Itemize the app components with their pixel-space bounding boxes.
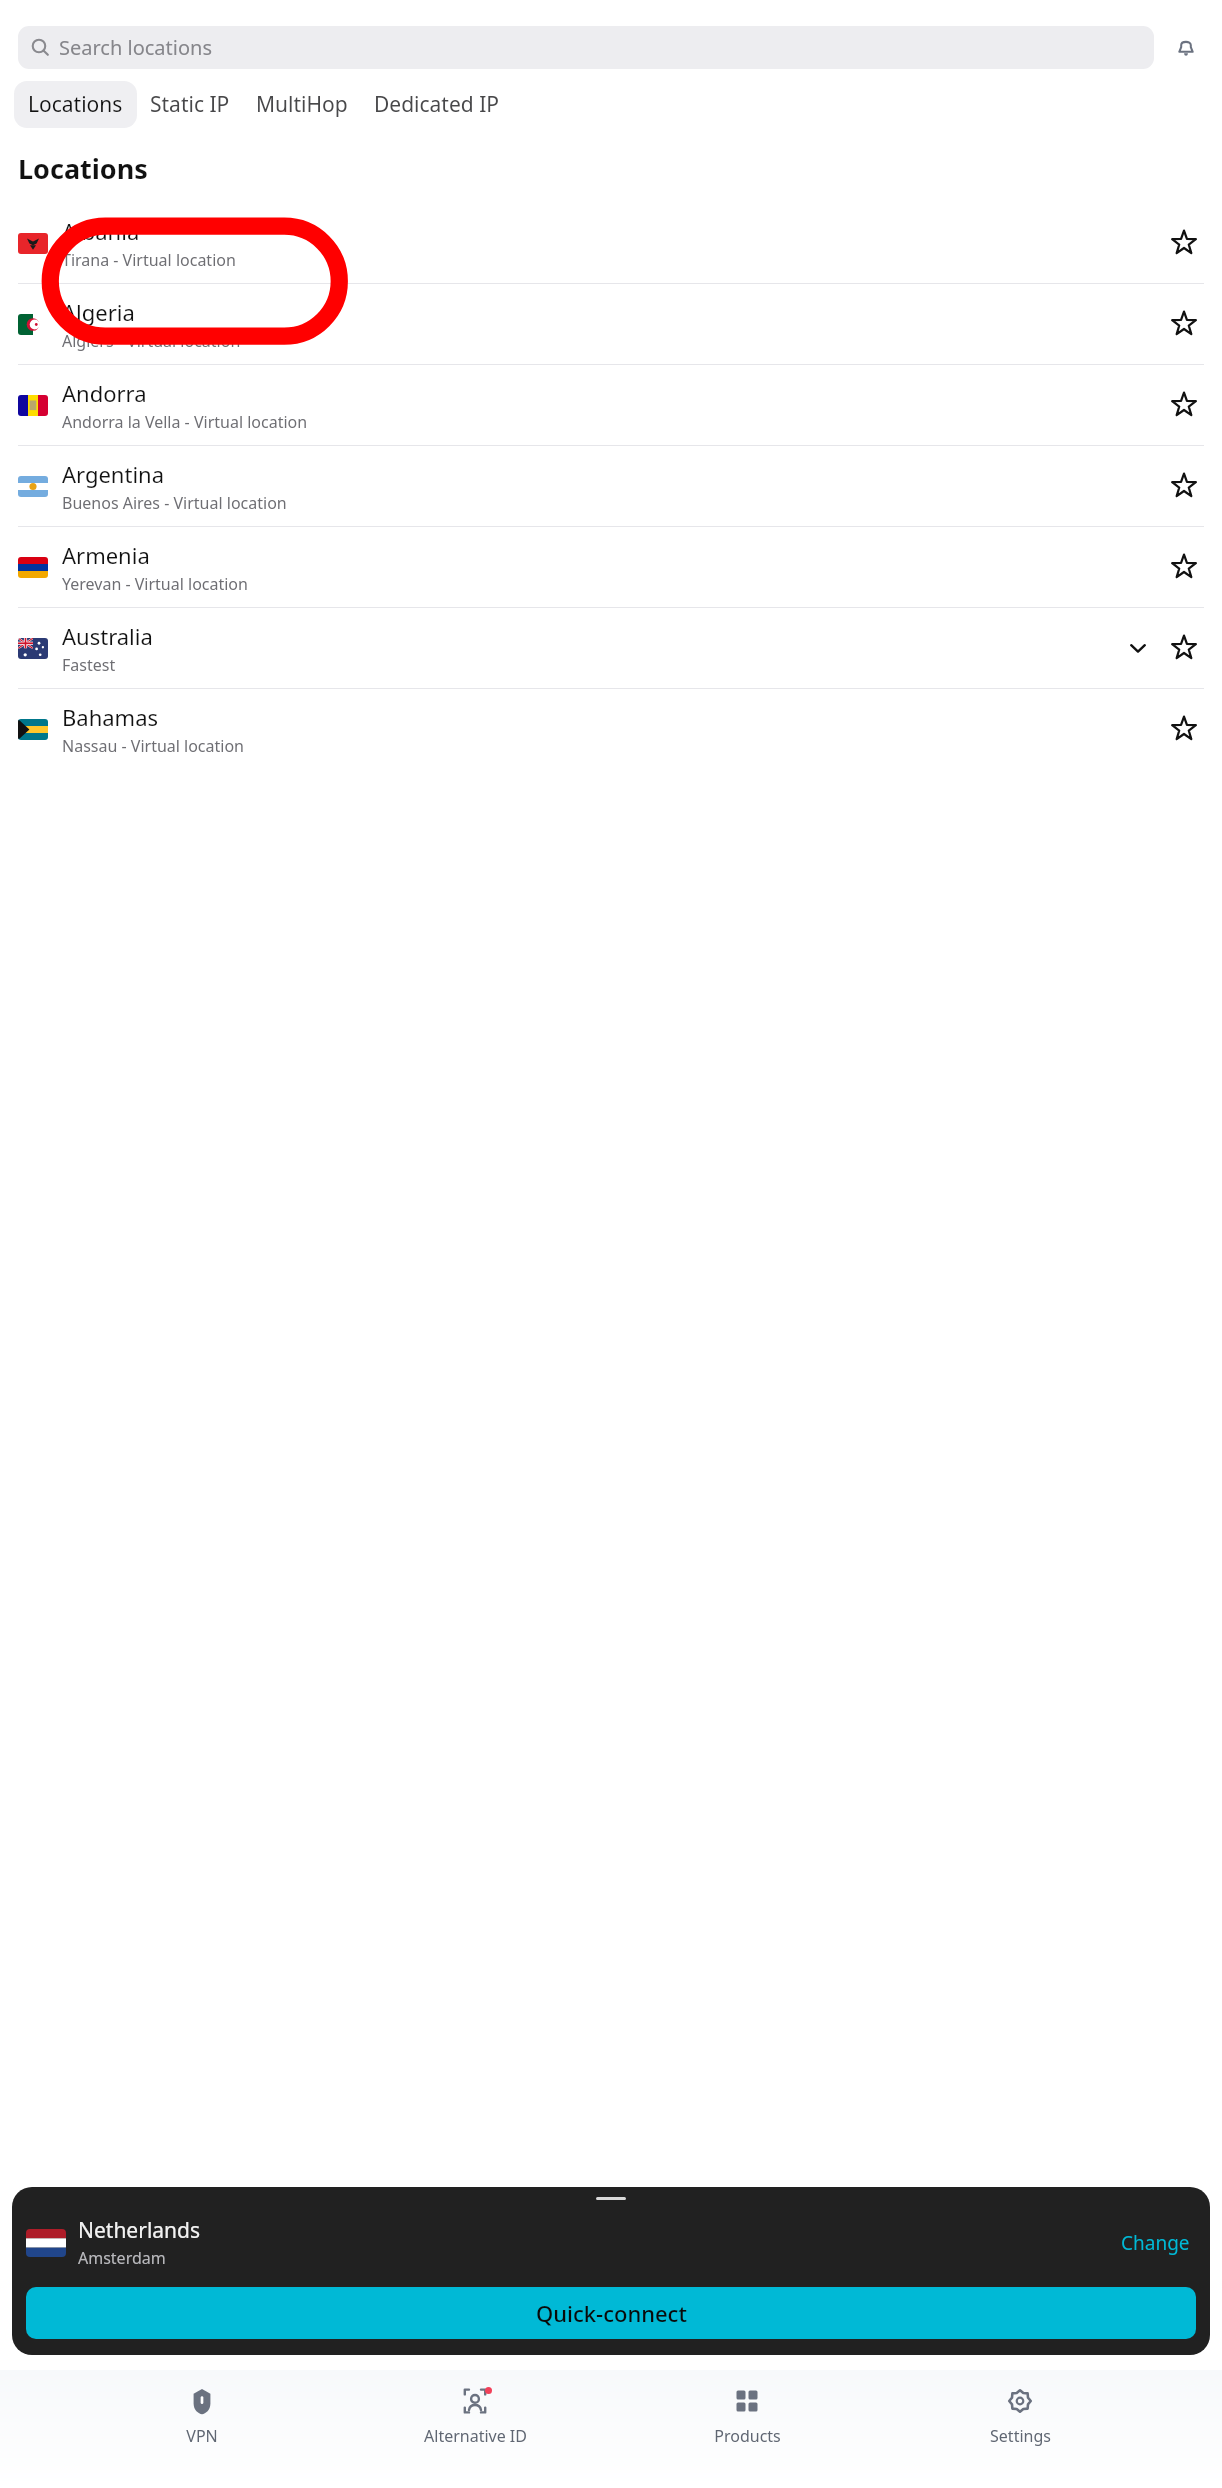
- button[interactable]: Australia: [0, 608, 1222, 688]
- button[interactable]: Settings: [950, 2382, 1090, 2451]
- staticText: Australia: [62, 621, 153, 651]
- staticText: Change: [1121, 2230, 1190, 2256]
- staticText: Buenos Aires - Virtual location: [62, 492, 287, 514]
- staticText: MultiHop: [256, 90, 348, 119]
- button[interactable]: Alternative ID: [405, 2382, 545, 2451]
- button[interactable]: Armenia: [0, 527, 1222, 607]
- staticText: Quick-connect: [536, 2298, 687, 2328]
- button[interactable]: VPN: [132, 2382, 272, 2451]
- button[interactable]: Favorite Armenia: [1164, 547, 1204, 587]
- staticText: Bahamas: [62, 702, 159, 732]
- staticText: Fastest: [62, 654, 116, 676]
- staticText: Dedicated IP: [374, 90, 499, 119]
- staticText: Products: [714, 2425, 781, 2447]
- staticText: Locations: [28, 90, 123, 119]
- button[interactable]: Products: [677, 2382, 817, 2451]
- staticText: Settings: [990, 2425, 1051, 2447]
- button[interactable]: Andorra: [0, 365, 1222, 445]
- staticText: Search locations: [59, 34, 212, 61]
- staticText: Nassau - Virtual location: [62, 735, 245, 757]
- staticText: Algiers - Virtual location: [62, 330, 241, 352]
- button[interactable]: MultiHop: [243, 81, 361, 128]
- button[interactable]: Change: [1115, 2224, 1196, 2262]
- staticText: VPN: [186, 2425, 218, 2447]
- button[interactable]: Notifications: [1168, 30, 1204, 66]
- staticText: Algeria: [62, 297, 135, 327]
- staticText: Albania: [62, 216, 140, 246]
- staticText: Static IP: [150, 90, 230, 119]
- staticText: Netherlands: [78, 2216, 201, 2245]
- button[interactable]: Static IP: [137, 81, 243, 128]
- button[interactable]: Bahamas: [0, 689, 1222, 769]
- staticText: Andorra: [62, 378, 147, 408]
- staticText: Andorra la Vella - Virtual location: [62, 411, 308, 433]
- staticText: Tirana - Virtual location: [62, 249, 236, 271]
- staticText: Yerevan - Virtual location: [62, 573, 248, 595]
- button[interactable]: Favorite Andorra: [1164, 385, 1204, 425]
- button[interactable]: Algeria: [0, 284, 1222, 364]
- button[interactable]: Expand Australia: [1118, 628, 1158, 668]
- staticText: Locations: [18, 150, 148, 187]
- staticText: Amsterdam: [78, 2247, 166, 2269]
- button[interactable]: Search locations: [18, 26, 1154, 69]
- button[interactable]: Favorite Australia: [1164, 628, 1204, 668]
- button[interactable]: Argentina: [0, 446, 1222, 526]
- button[interactable]: Favorite Bahamas: [1164, 709, 1204, 749]
- button[interactable]: Locations: [14, 81, 137, 128]
- button[interactable]: Favorite Argentina: [1164, 466, 1204, 506]
- button[interactable]: Favorite Algeria: [1164, 304, 1204, 344]
- button[interactable]: Favorite Albania: [1164, 223, 1204, 263]
- button[interactable]: Albania: [0, 203, 1222, 283]
- staticText: Argentina: [62, 459, 165, 489]
- button[interactable]: Quick-connect: [26, 2287, 1196, 2339]
- staticText: Alternative ID: [424, 2425, 527, 2447]
- staticText: Armenia: [62, 540, 150, 570]
- button[interactable]: Dedicated IP: [361, 81, 512, 128]
